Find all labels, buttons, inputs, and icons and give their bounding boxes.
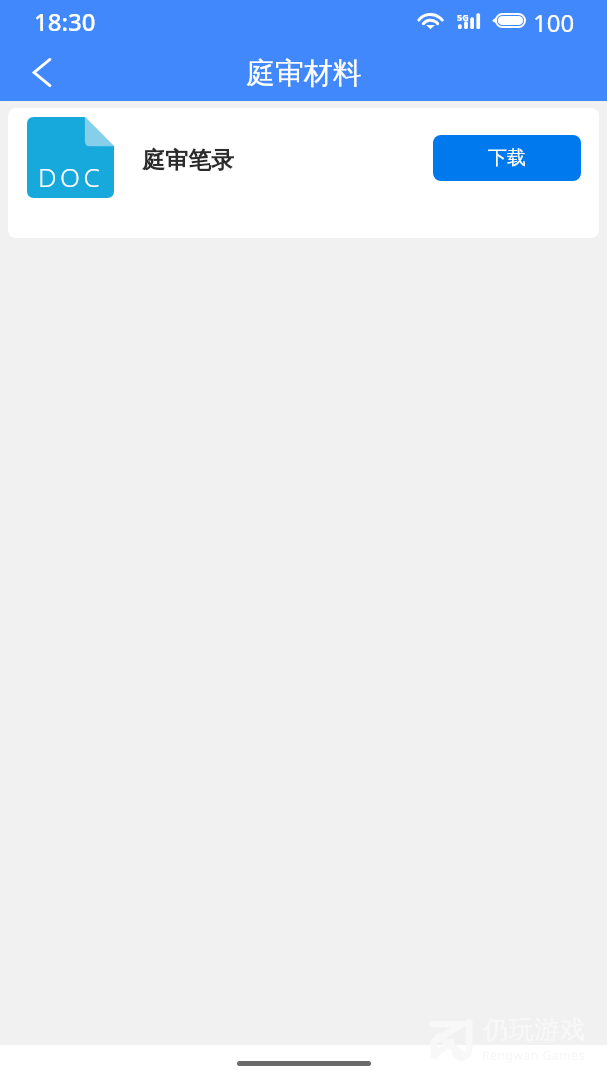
- staticText: DOC: [38, 159, 104, 194]
- staticText: 5G: [457, 11, 469, 23]
- staticText: 庭审材料: [246, 55, 362, 92]
- staticText: 18:30: [34, 5, 96, 38]
- button[interactable]: DOC: [8, 108, 599, 238]
- staticText: 100: [533, 6, 575, 39]
- button[interactable]: Back: [0, 45, 64, 101]
- button[interactable]: 下载: [433, 135, 581, 181]
- staticText: 庭审笔录: [142, 146, 234, 175]
- staticText: 下载: [488, 146, 526, 170]
